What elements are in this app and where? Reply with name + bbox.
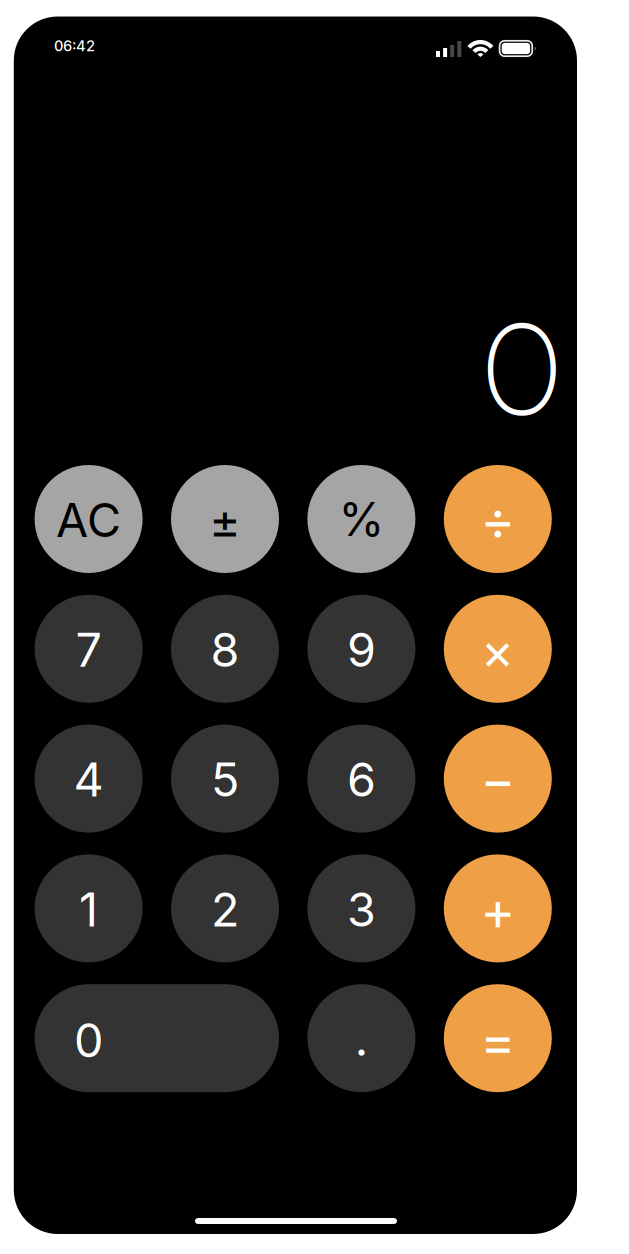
button[interactable]: . <box>307 984 415 1092</box>
staticText: . <box>354 1009 368 1067</box>
button[interactable]: 7 <box>35 595 143 703</box>
staticText: = <box>480 1009 515 1073</box>
staticText: ÷ <box>480 488 515 552</box>
button[interactable]: ÷ <box>444 465 552 573</box>
button[interactable]: 8 <box>171 595 279 703</box>
staticText: × <box>481 620 515 681</box>
staticText: 2 <box>211 881 239 938</box>
staticText: 3 <box>347 881 376 938</box>
staticText: 4 <box>74 751 104 808</box>
button[interactable]: ± <box>171 465 279 573</box>
staticText: 0 <box>74 1012 103 1068</box>
button[interactable]: = <box>444 984 552 1092</box>
button[interactable]: 2 <box>171 854 279 962</box>
staticText: % <box>338 491 384 547</box>
button[interactable]: % <box>307 465 415 573</box>
button[interactable]: 4 <box>35 725 143 833</box>
staticText: 7 <box>76 622 102 678</box>
staticText: 1 <box>79 881 98 938</box>
button[interactable]: + <box>444 854 552 962</box>
staticText: − <box>480 747 515 812</box>
button[interactable]: 6 <box>307 725 415 833</box>
button[interactable]: 1 <box>35 854 143 962</box>
staticText: 9 <box>347 622 376 678</box>
staticText: + <box>480 878 515 943</box>
staticText: AC <box>56 492 121 548</box>
staticText: 0 <box>484 292 560 446</box>
button[interactable]: × <box>444 595 552 703</box>
staticText: 8 <box>210 622 239 678</box>
button[interactable]: 3 <box>307 854 415 962</box>
button[interactable]: 5 <box>171 725 279 833</box>
staticText: 06:42 <box>54 37 95 55</box>
button[interactable]: 9 <box>307 595 415 703</box>
button[interactable]: 0 <box>35 984 279 1092</box>
button[interactable]: − <box>444 725 552 833</box>
staticText: 5 <box>211 751 239 808</box>
staticText: ± <box>209 492 241 550</box>
staticText: 6 <box>347 751 376 808</box>
button[interactable]: AC <box>35 465 143 573</box>
